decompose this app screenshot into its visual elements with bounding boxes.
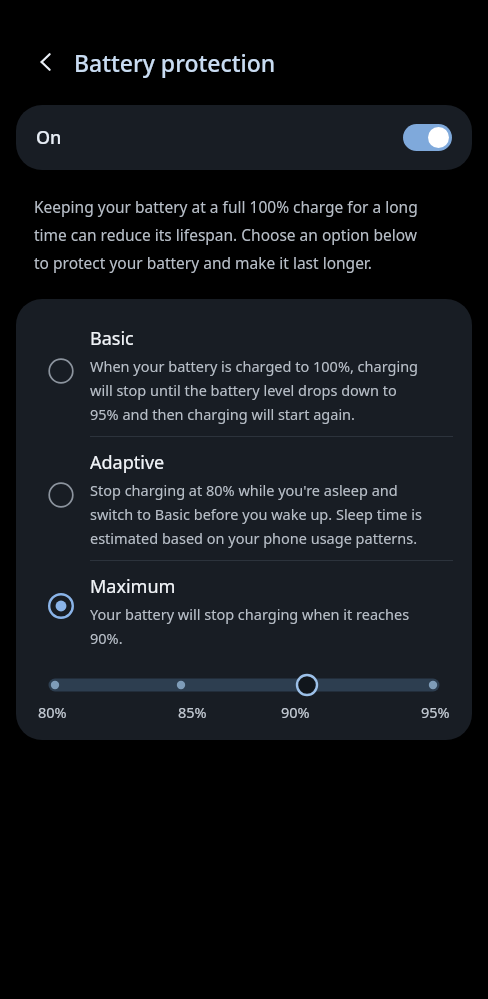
staticText: When your battery is charged to 100%, ch… xyxy=(90,356,419,376)
staticText: 90%. xyxy=(90,628,123,648)
button[interactable]: Adaptive xyxy=(16,437,472,560)
button[interactable]: Maximum xyxy=(16,561,472,660)
staticText: Adaptive xyxy=(90,450,165,475)
staticText: Maximum xyxy=(90,574,176,599)
staticText: Keeping your battery at a full 100% char… xyxy=(34,196,418,217)
staticText: On xyxy=(36,125,62,150)
staticText: time can reduce its lifespan. Choose an … xyxy=(34,224,417,245)
staticText: 90% xyxy=(281,702,310,722)
staticText: Battery protection xyxy=(74,47,276,78)
staticText: will stop until the battery level drops … xyxy=(90,380,397,400)
staticText: to protect your battery and make it last… xyxy=(34,252,372,273)
staticText: 85% xyxy=(178,702,207,722)
staticText: switch to Basic before you wake up. Slee… xyxy=(90,504,422,524)
staticText: 95% and then charging will start again. xyxy=(90,404,355,424)
button[interactable]: Basic xyxy=(16,313,472,436)
button[interactable]: Back xyxy=(22,38,70,86)
staticText: Stop charging at 80% while you're asleep… xyxy=(90,480,398,500)
staticText: estimated based on your phone usage patt… xyxy=(90,528,418,548)
staticText: 80% xyxy=(38,702,67,722)
staticText: 95% xyxy=(421,702,450,722)
button[interactable]: On xyxy=(16,105,472,170)
staticText: Basic xyxy=(90,326,134,351)
staticText: Your battery will stop charging when it … xyxy=(90,604,410,624)
